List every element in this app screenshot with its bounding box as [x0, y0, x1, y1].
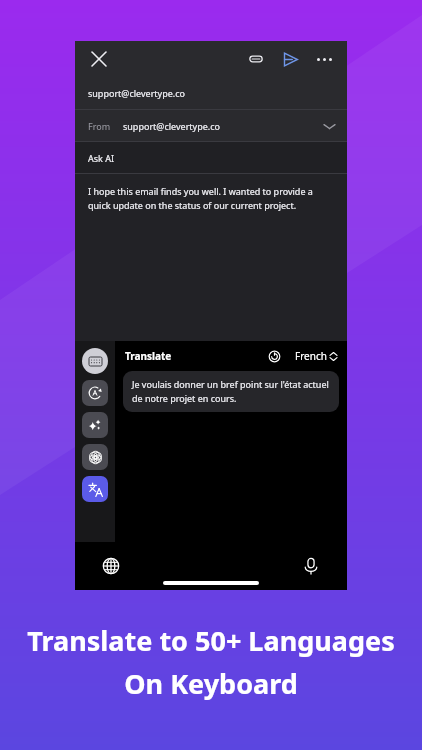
staticText: Ask AI	[88, 152, 115, 164]
staticText: From	[88, 120, 111, 132]
button[interactable]: Refresh translation	[263, 345, 285, 367]
button[interactable]: Voice input	[297, 552, 325, 580]
button[interactable]: French	[295, 349, 337, 363]
button[interactable]: Change language	[97, 552, 125, 580]
button[interactable]: Send	[275, 44, 305, 74]
button[interactable]: More options	[309, 44, 339, 74]
staticText: I hope this email finds you well. I want…	[88, 185, 329, 212]
staticText: Je voulais donner un bref point sur l'ét…	[132, 378, 330, 405]
button[interactable]: AI magic	[82, 412, 108, 438]
staticText: Translate	[125, 349, 172, 363]
staticText: French	[295, 349, 327, 363]
button[interactable]: Attach	[241, 44, 271, 74]
staticText: support@clevertype.co	[88, 87, 185, 99]
staticText: support@clevertype.co	[123, 120, 220, 132]
button[interactable]: Auto correct	[82, 380, 108, 406]
button[interactable]: From	[75, 110, 347, 141]
staticText: Translate to 50+ Languages	[27, 622, 395, 659]
button[interactable]: Keyboard	[82, 348, 108, 374]
staticText: On Keyboard	[124, 665, 298, 702]
button[interactable]: Close	[85, 45, 113, 73]
button[interactable]: Translate	[82, 476, 108, 502]
button[interactable]: ChatGPT	[82, 444, 108, 470]
button[interactable]: Ask AI	[75, 142, 347, 173]
button[interactable]: Je voulais donner un bref point sur l'ét…	[123, 371, 339, 412]
